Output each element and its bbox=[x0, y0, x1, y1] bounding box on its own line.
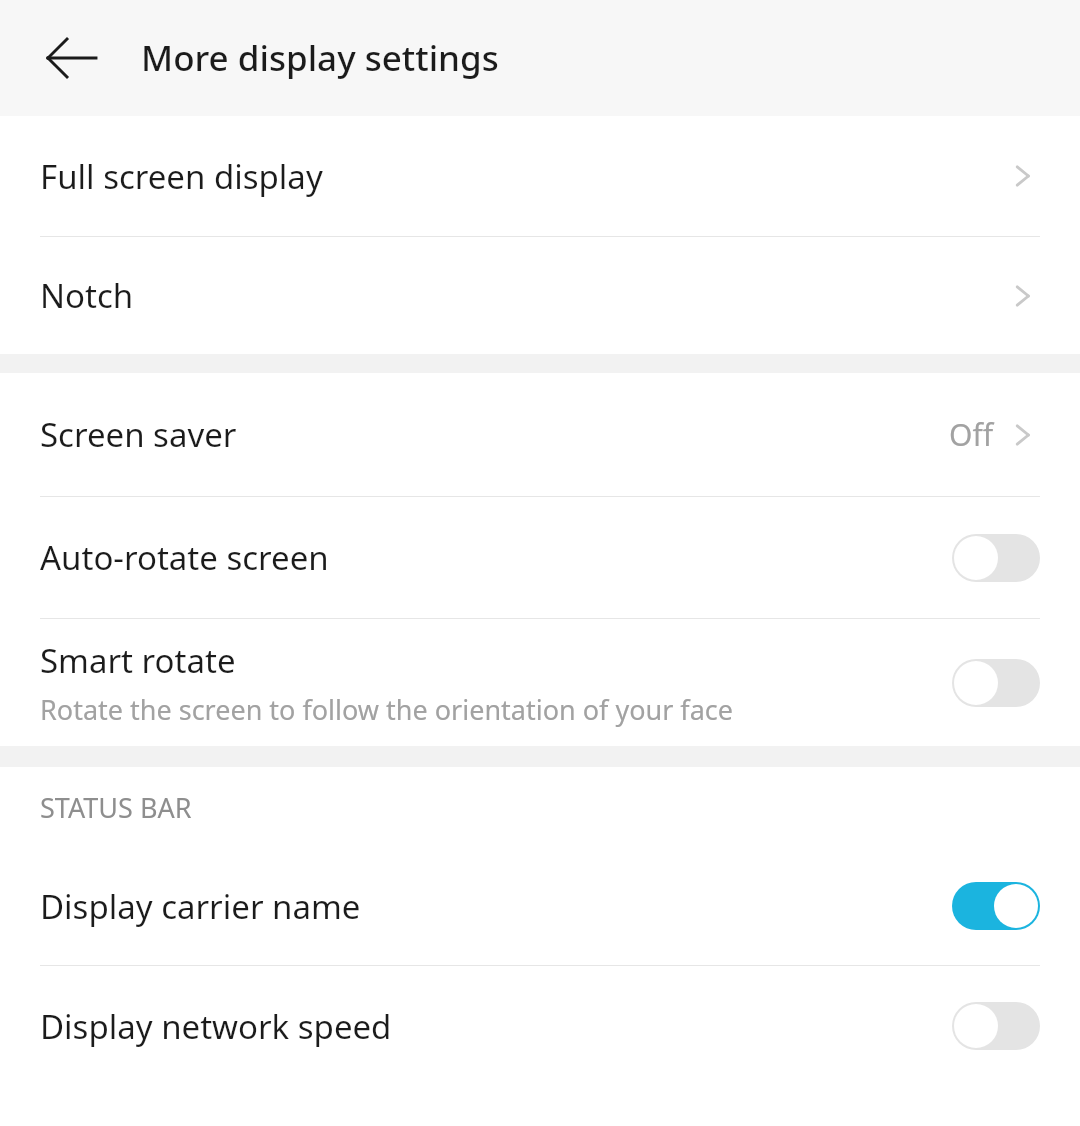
button[interactable]: Display network speed bbox=[0, 966, 1080, 1086]
button[interactable]: Off bbox=[952, 1002, 1040, 1050]
staticText: Smart rotate bbox=[40, 638, 236, 683]
button[interactable]: Smart rotate bbox=[0, 619, 1080, 746]
staticText: More display settings bbox=[141, 34, 499, 82]
staticText: Display network speed bbox=[40, 1004, 392, 1049]
button[interactable]: Display carrier name bbox=[0, 847, 1080, 965]
staticText: Screen saver bbox=[40, 412, 237, 457]
button[interactable]: Back bbox=[26, 12, 118, 104]
button[interactable]: Off bbox=[952, 534, 1040, 582]
staticText: Rotate the screen to follow the orientat… bbox=[40, 691, 733, 728]
button[interactable]: Auto-rotate screen bbox=[0, 497, 1080, 618]
button[interactable]: Screen saver bbox=[0, 373, 1080, 496]
staticText: Full screen display bbox=[40, 154, 323, 199]
button[interactable]: Off bbox=[952, 659, 1040, 707]
staticText: STATUS BAR bbox=[40, 789, 192, 826]
staticText: Display carrier name bbox=[40, 884, 361, 929]
staticText: Off bbox=[949, 414, 994, 455]
staticText: Notch bbox=[40, 273, 134, 318]
button[interactable]: Notch bbox=[0, 237, 1080, 354]
button[interactable]: On bbox=[952, 882, 1040, 930]
staticText: Auto-rotate screen bbox=[40, 535, 329, 580]
button[interactable]: Full screen display bbox=[0, 116, 1080, 236]
